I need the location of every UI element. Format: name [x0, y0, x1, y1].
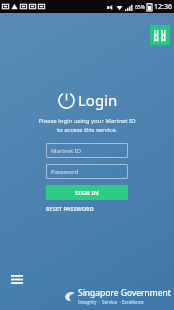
button[interactable]: Password	[46, 164, 128, 179]
staticText: SIGN IN	[75, 189, 99, 197]
staticText: Password	[51, 168, 79, 176]
staticText: RESET PASSWORD	[46, 205, 94, 212]
staticText: Integrity · Service · Excellence	[78, 299, 144, 305]
staticText: Login	[78, 90, 118, 110]
staticText: Marinet ID	[51, 147, 82, 155]
button[interactable]: App logo	[150, 25, 170, 45]
button[interactable]: Menu	[8, 270, 26, 288]
staticText: Singapore Government	[78, 287, 171, 299]
staticText: 65%	[135, 4, 145, 11]
staticText: 12:36	[154, 2, 172, 12]
staticText: Please login using your Marinet ID to ac…	[0, 117, 174, 134]
button[interactable]: RESET PASSWORD	[46, 205, 128, 212]
button[interactable]: SIGN IN	[46, 185, 128, 200]
button[interactable]: Marinet ID	[46, 143, 128, 158]
